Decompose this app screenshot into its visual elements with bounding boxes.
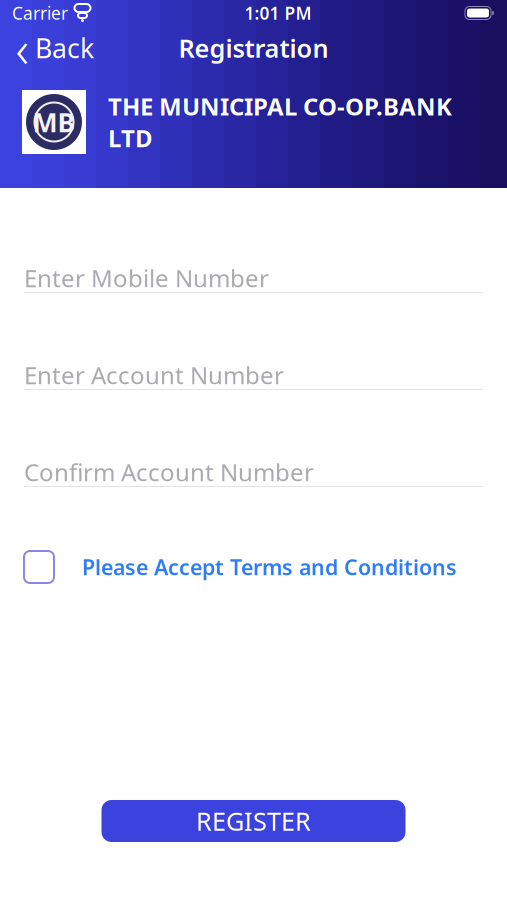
button[interactable]: Please Accept Terms and Conditions bbox=[24, 545, 483, 589]
button[interactable]: REGISTER bbox=[101, 800, 405, 842]
staticText: Enter Mobile Number bbox=[24, 262, 269, 294]
staticText: ‹ bbox=[15, 14, 28, 82]
staticText: Registration bbox=[178, 31, 328, 65]
staticText: 1:01 PM bbox=[244, 1, 311, 24]
staticText: Back bbox=[35, 30, 94, 66]
staticText: Please Accept Terms and Conditions bbox=[82, 553, 457, 581]
staticText: REGISTER bbox=[196, 804, 311, 838]
staticText: Confirm Account Number bbox=[24, 456, 314, 488]
staticText: THE MUNICIPAL CO-OP.BANK LTD bbox=[108, 90, 452, 154]
staticText: Enter Account Number bbox=[24, 359, 284, 391]
staticText: MB bbox=[32, 104, 75, 140]
button[interactable]: ‹ bbox=[0, 26, 106, 70]
staticText: Carrier bbox=[12, 1, 68, 24]
